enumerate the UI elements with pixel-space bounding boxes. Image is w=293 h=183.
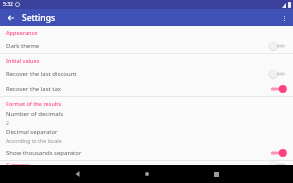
staticText: Decimal separator (6, 128, 58, 136)
button[interactable]: Number of decimals (0, 109, 293, 127)
staticText: Appearance (6, 29, 38, 36)
button[interactable]: Back (4, 11, 17, 24)
staticText: Initial values (6, 57, 40, 64)
button[interactable]: More options (278, 12, 290, 24)
button[interactable]: Home (140, 167, 154, 181)
staticText: Show thousands separator (6, 149, 268, 157)
staticText: Currency (6, 161, 30, 165)
button[interactable]: Dark theme (0, 38, 293, 53)
staticText: Number of decimals (6, 110, 64, 118)
staticText: Recover the last discount (6, 70, 268, 78)
staticText: Format of the results (6, 100, 62, 107)
staticText: According to the locale (6, 137, 62, 144)
staticText: Settings (22, 12, 56, 24)
button[interactable]: Back (71, 167, 85, 181)
button[interactable]: Decimal separator (0, 127, 293, 145)
button[interactable]: Recover the last tax (0, 81, 293, 96)
staticText: 2 (6, 119, 9, 126)
staticText: Dark theme (6, 42, 268, 50)
button[interactable]: Recover the last discount (0, 66, 293, 81)
button[interactable]: Show thousands separator (0, 145, 293, 160)
staticText: Recover the last tax (6, 85, 268, 93)
staticText: 5:32 (3, 1, 13, 8)
button[interactable]: Recents (209, 167, 223, 181)
